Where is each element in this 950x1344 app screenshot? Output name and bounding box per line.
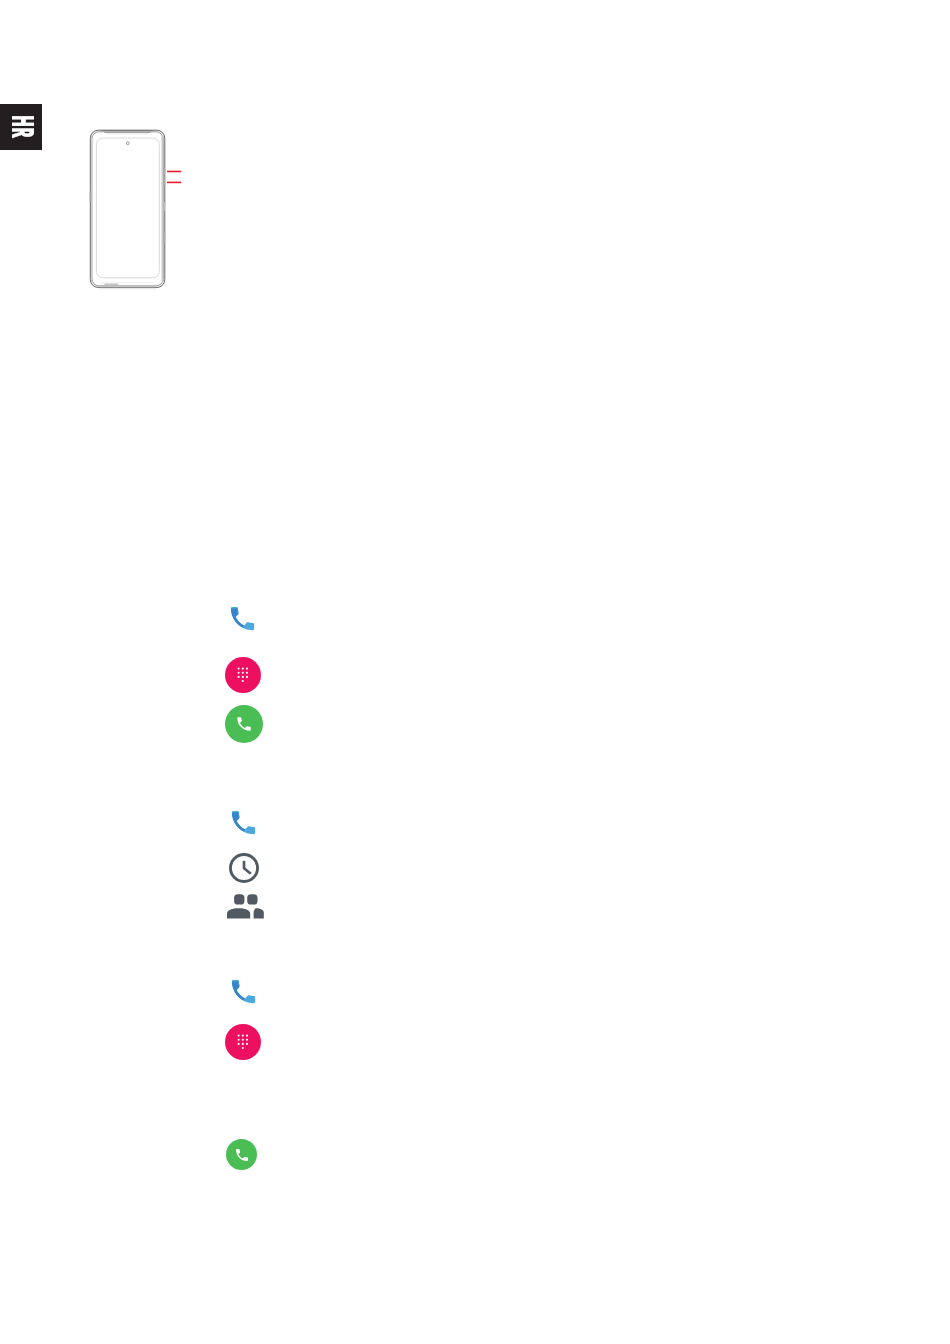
button[interactable]: Call [226,1139,257,1170]
button[interactable]: Phone app [228,976,259,1007]
button[interactable]: Dialpad [225,1024,261,1060]
staticText: HR [3,115,44,138]
button[interactable]: Phone app [228,807,259,838]
button[interactable]: Recents [229,853,259,883]
button[interactable]: Dialpad [225,657,261,693]
button[interactable]: Contacts [227,894,264,919]
button[interactable]: HR section tab [0,104,42,150]
button[interactable]: Call [225,705,263,743]
button[interactable]: Phone app [227,603,258,634]
